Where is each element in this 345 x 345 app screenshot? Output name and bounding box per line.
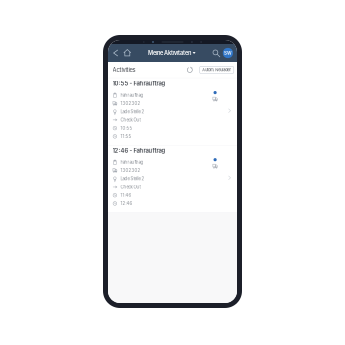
button[interactable]: Home bbox=[121, 49, 133, 57]
button[interactable]: Refresh bbox=[185, 67, 195, 73]
staticText: Activities bbox=[113, 66, 136, 73]
button[interactable]: Autom. Neuladen bbox=[200, 66, 234, 73]
staticText: 1302302 bbox=[120, 168, 140, 173]
staticText: 11:55 bbox=[120, 134, 131, 139]
staticText: 12:46 - Fahrauftrag bbox=[113, 147, 166, 154]
button[interactable]: 12:46 - Fahrauftrag bbox=[108, 145, 237, 212]
staticText: SW bbox=[224, 50, 232, 56]
button[interactable]: Meine Aktivitäten bbox=[148, 50, 196, 56]
button[interactable]: Search bbox=[210, 49, 222, 57]
staticText: Fahrauftrag bbox=[120, 92, 143, 98]
button[interactable]: Account bbox=[222, 48, 235, 58]
staticText: Check Out bbox=[120, 117, 140, 122]
staticText: Autom. Neuladen bbox=[202, 68, 231, 72]
staticText: Check Out bbox=[120, 184, 140, 190]
staticText: Fahrauftrag bbox=[120, 160, 143, 165]
staticText: 10:55 - Fahrauftrag bbox=[113, 80, 166, 87]
button[interactable]: Back bbox=[110, 48, 121, 57]
staticText: 12:46 bbox=[120, 201, 132, 206]
button[interactable]: 10:55 - Fahrauftrag bbox=[108, 78, 237, 145]
staticText: Lade Stelle 2 bbox=[120, 109, 144, 114]
staticText: Meine Aktivitäten bbox=[148, 50, 191, 56]
staticText: Lade Stelle 2 bbox=[120, 176, 144, 181]
staticText: 1302302 bbox=[120, 101, 140, 106]
staticText: 10:55 bbox=[120, 125, 132, 131]
staticText: 11:46 bbox=[120, 193, 131, 198]
